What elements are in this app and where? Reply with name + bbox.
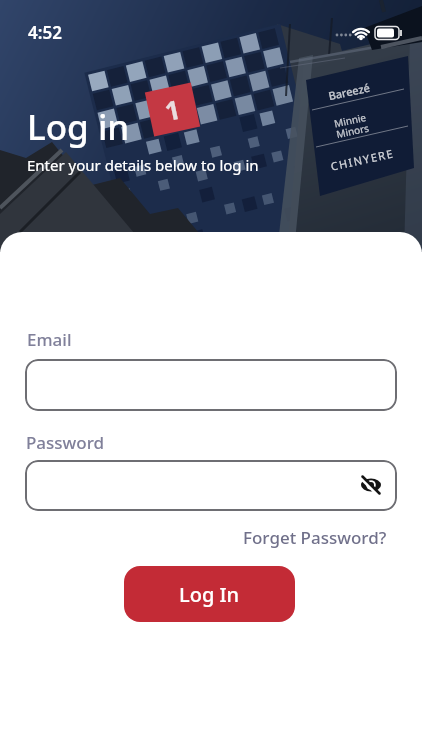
staticText: Bareezé xyxy=(327,80,371,103)
staticText: Enter your details below to log in xyxy=(27,155,259,175)
staticText: Email xyxy=(27,328,72,351)
button[interactable]: Forget Password? xyxy=(243,526,387,549)
button[interactable] xyxy=(25,460,397,511)
staticText: CHINYERE xyxy=(329,145,396,174)
staticText: Minnie Minors xyxy=(333,110,370,141)
staticText: Password xyxy=(26,431,105,454)
staticText: Log In xyxy=(179,581,240,608)
staticText: 4:52 xyxy=(28,21,62,44)
staticText: Forget Password? xyxy=(243,526,387,549)
staticText: Log in xyxy=(27,103,130,151)
button[interactable] xyxy=(25,359,397,411)
staticText: 1 xyxy=(161,91,183,128)
button[interactable]: Log In xyxy=(124,566,295,622)
